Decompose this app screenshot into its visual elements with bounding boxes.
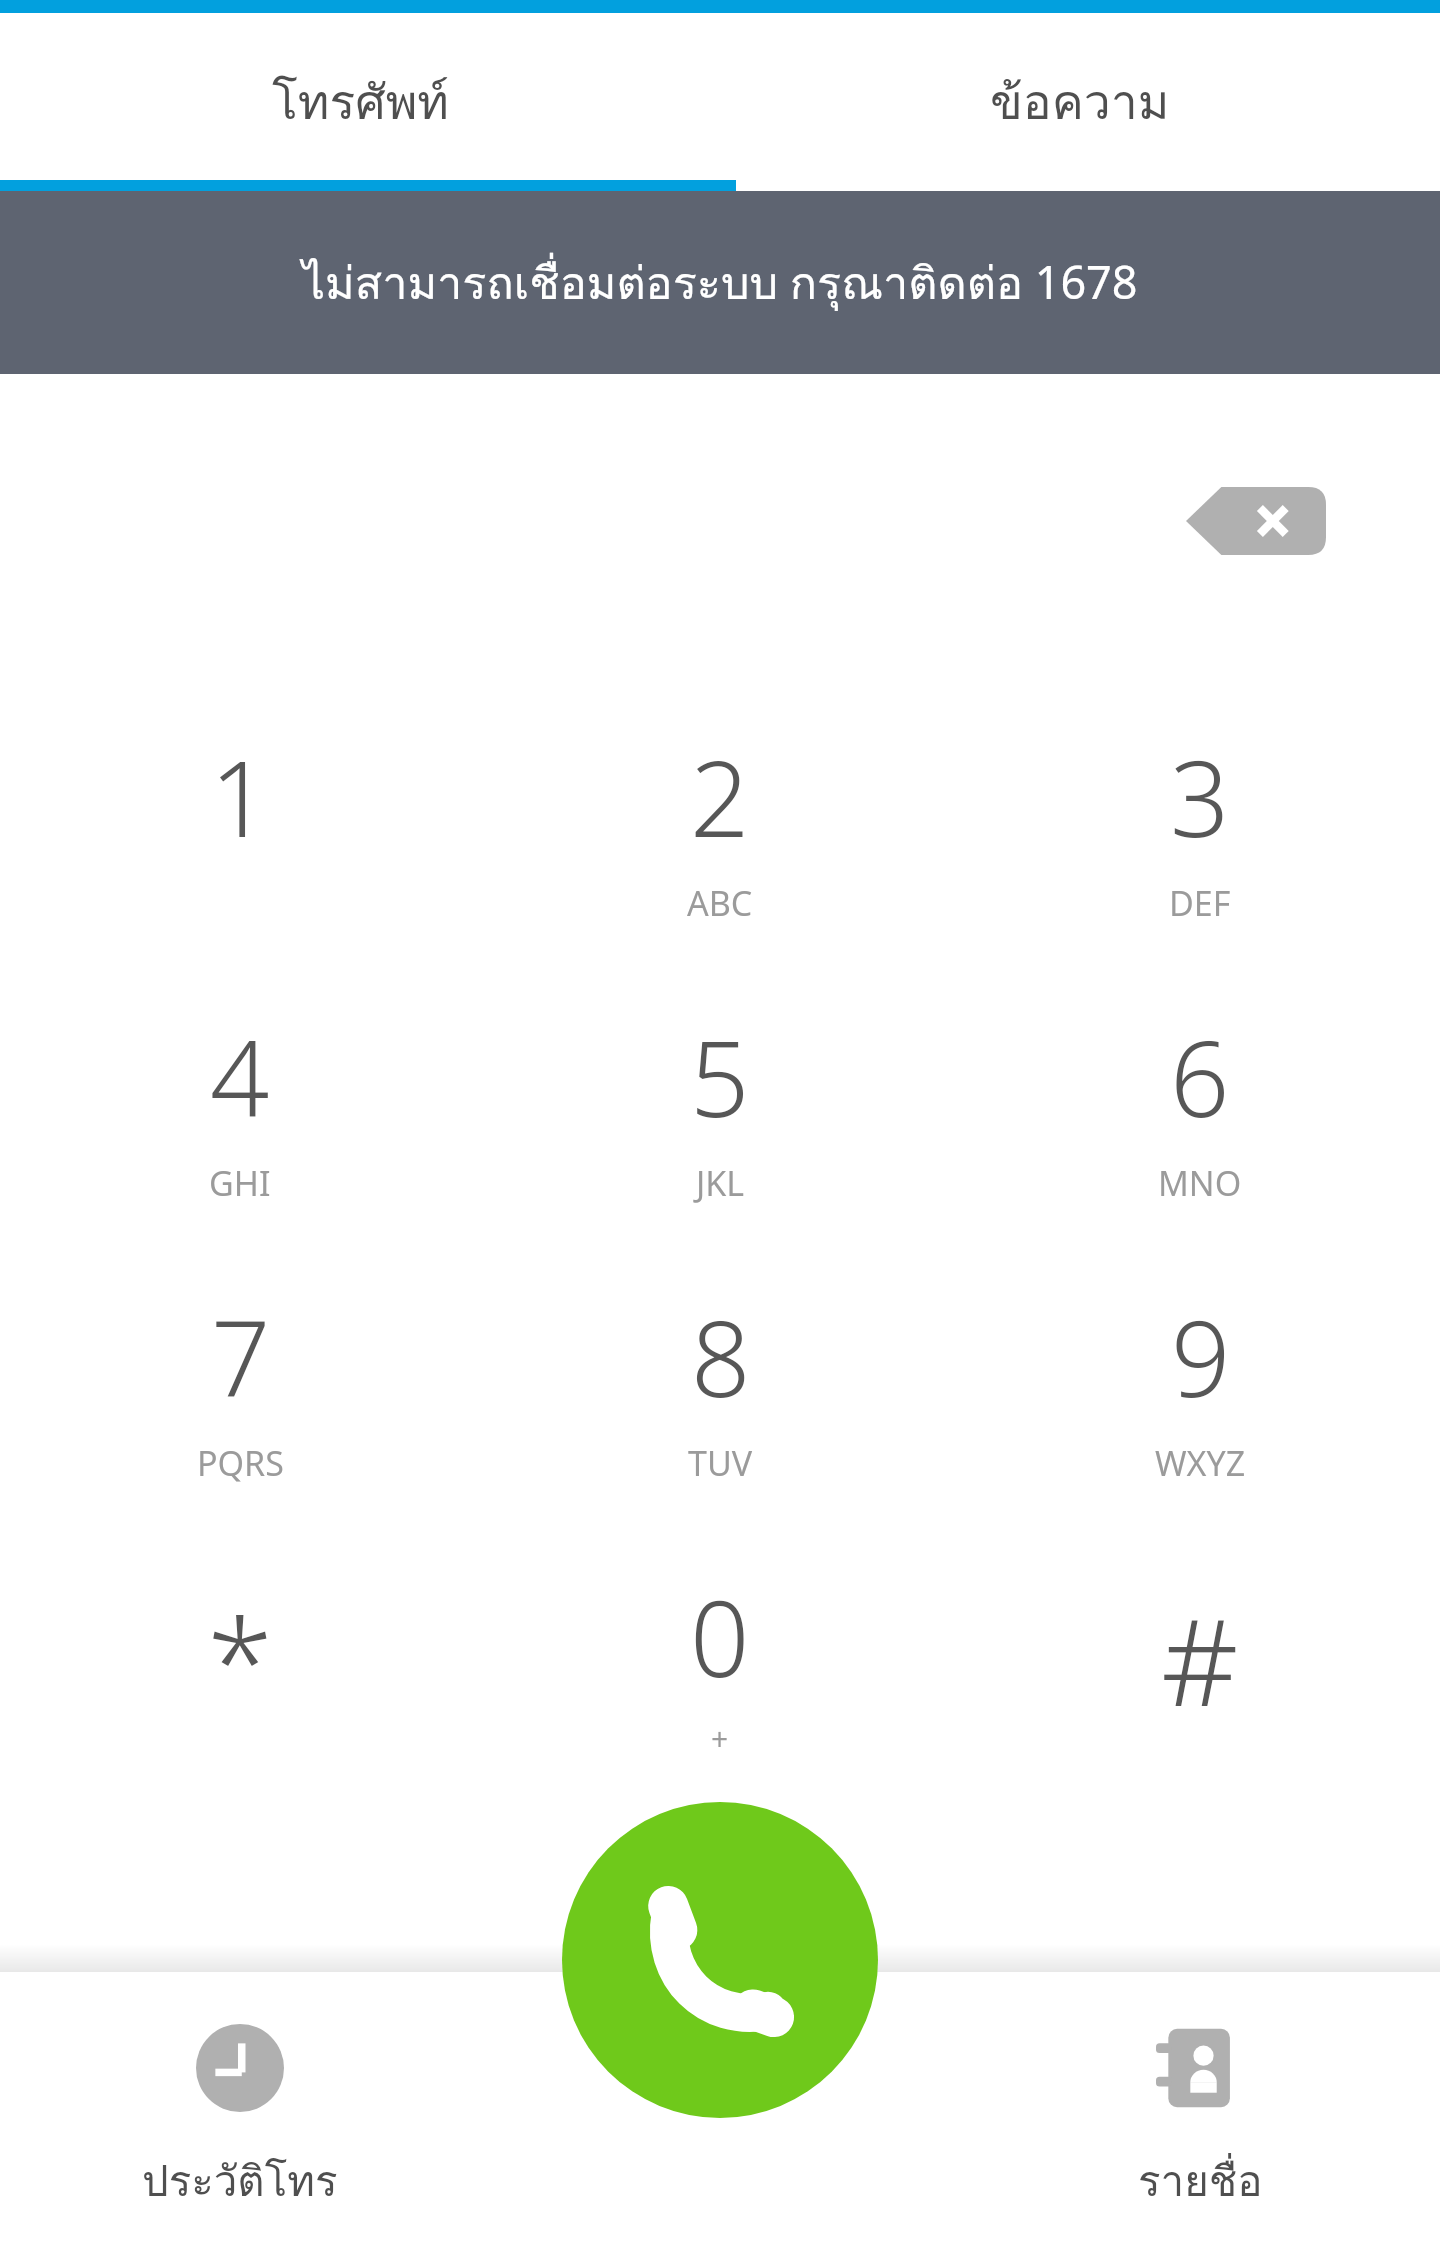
staticText: รายชื่อ bbox=[1138, 2148, 1263, 2215]
button[interactable]: Call bbox=[562, 1802, 878, 2118]
staticText: + bbox=[711, 1718, 729, 1759]
button[interactable]: 0 bbox=[480, 1508, 960, 1788]
staticText: ไม่สามารถเชื่อมต่อระบบ กรุณาติดต่อ 1678 bbox=[302, 247, 1138, 319]
staticText: ข้อความ bbox=[990, 64, 1170, 140]
staticText: ประวัติโทร bbox=[142, 2148, 338, 2215]
staticText: DEF bbox=[1169, 880, 1231, 926]
button[interactable]: ข้อความ bbox=[720, 13, 1440, 191]
staticText: 0 bbox=[690, 1566, 750, 1708]
button[interactable]: 6 bbox=[960, 948, 1440, 1228]
button[interactable]: 4 bbox=[0, 948, 480, 1228]
staticText: * bbox=[207, 1578, 274, 1741]
button[interactable]: * bbox=[0, 1508, 480, 1788]
staticText: 4 bbox=[210, 1006, 270, 1148]
button[interactable]: 2 bbox=[480, 668, 960, 948]
staticText: WXYZ bbox=[1155, 1440, 1246, 1486]
staticText: 1 bbox=[210, 726, 270, 868]
staticText: ABC bbox=[687, 880, 753, 926]
staticText: # bbox=[1161, 1578, 1239, 1741]
button[interactable]: 1 bbox=[0, 668, 480, 948]
staticText: 5 bbox=[690, 1006, 750, 1148]
button[interactable]: 8 bbox=[480, 1228, 960, 1508]
button[interactable]: 9 bbox=[960, 1228, 1440, 1508]
button[interactable]: Backspace bbox=[1168, 459, 1344, 583]
staticText: โทรศัพท์ bbox=[272, 64, 449, 140]
staticText: 2 bbox=[690, 726, 750, 868]
staticText: JKL bbox=[696, 1160, 745, 1206]
button[interactable]: 5 bbox=[480, 948, 960, 1228]
staticText: 9 bbox=[1171, 1286, 1231, 1428]
staticText: 3 bbox=[1170, 726, 1230, 868]
staticText: TUV bbox=[688, 1440, 753, 1486]
button[interactable]: โทรศัพท์ bbox=[0, 13, 720, 191]
staticText: GHI bbox=[209, 1160, 271, 1206]
button[interactable]: Contacts bbox=[960, 1972, 1440, 2253]
staticText: 6 bbox=[1170, 1006, 1230, 1148]
button[interactable]: # bbox=[960, 1508, 1440, 1788]
button[interactable]: 3 bbox=[960, 668, 1440, 948]
button[interactable]: 7 bbox=[0, 1228, 480, 1508]
staticText: PQRS bbox=[197, 1440, 284, 1486]
staticText: 7 bbox=[211, 1286, 271, 1428]
staticText: MNO bbox=[1158, 1160, 1242, 1206]
staticText: 8 bbox=[691, 1286, 751, 1428]
button[interactable]: Call history bbox=[0, 1972, 480, 2253]
